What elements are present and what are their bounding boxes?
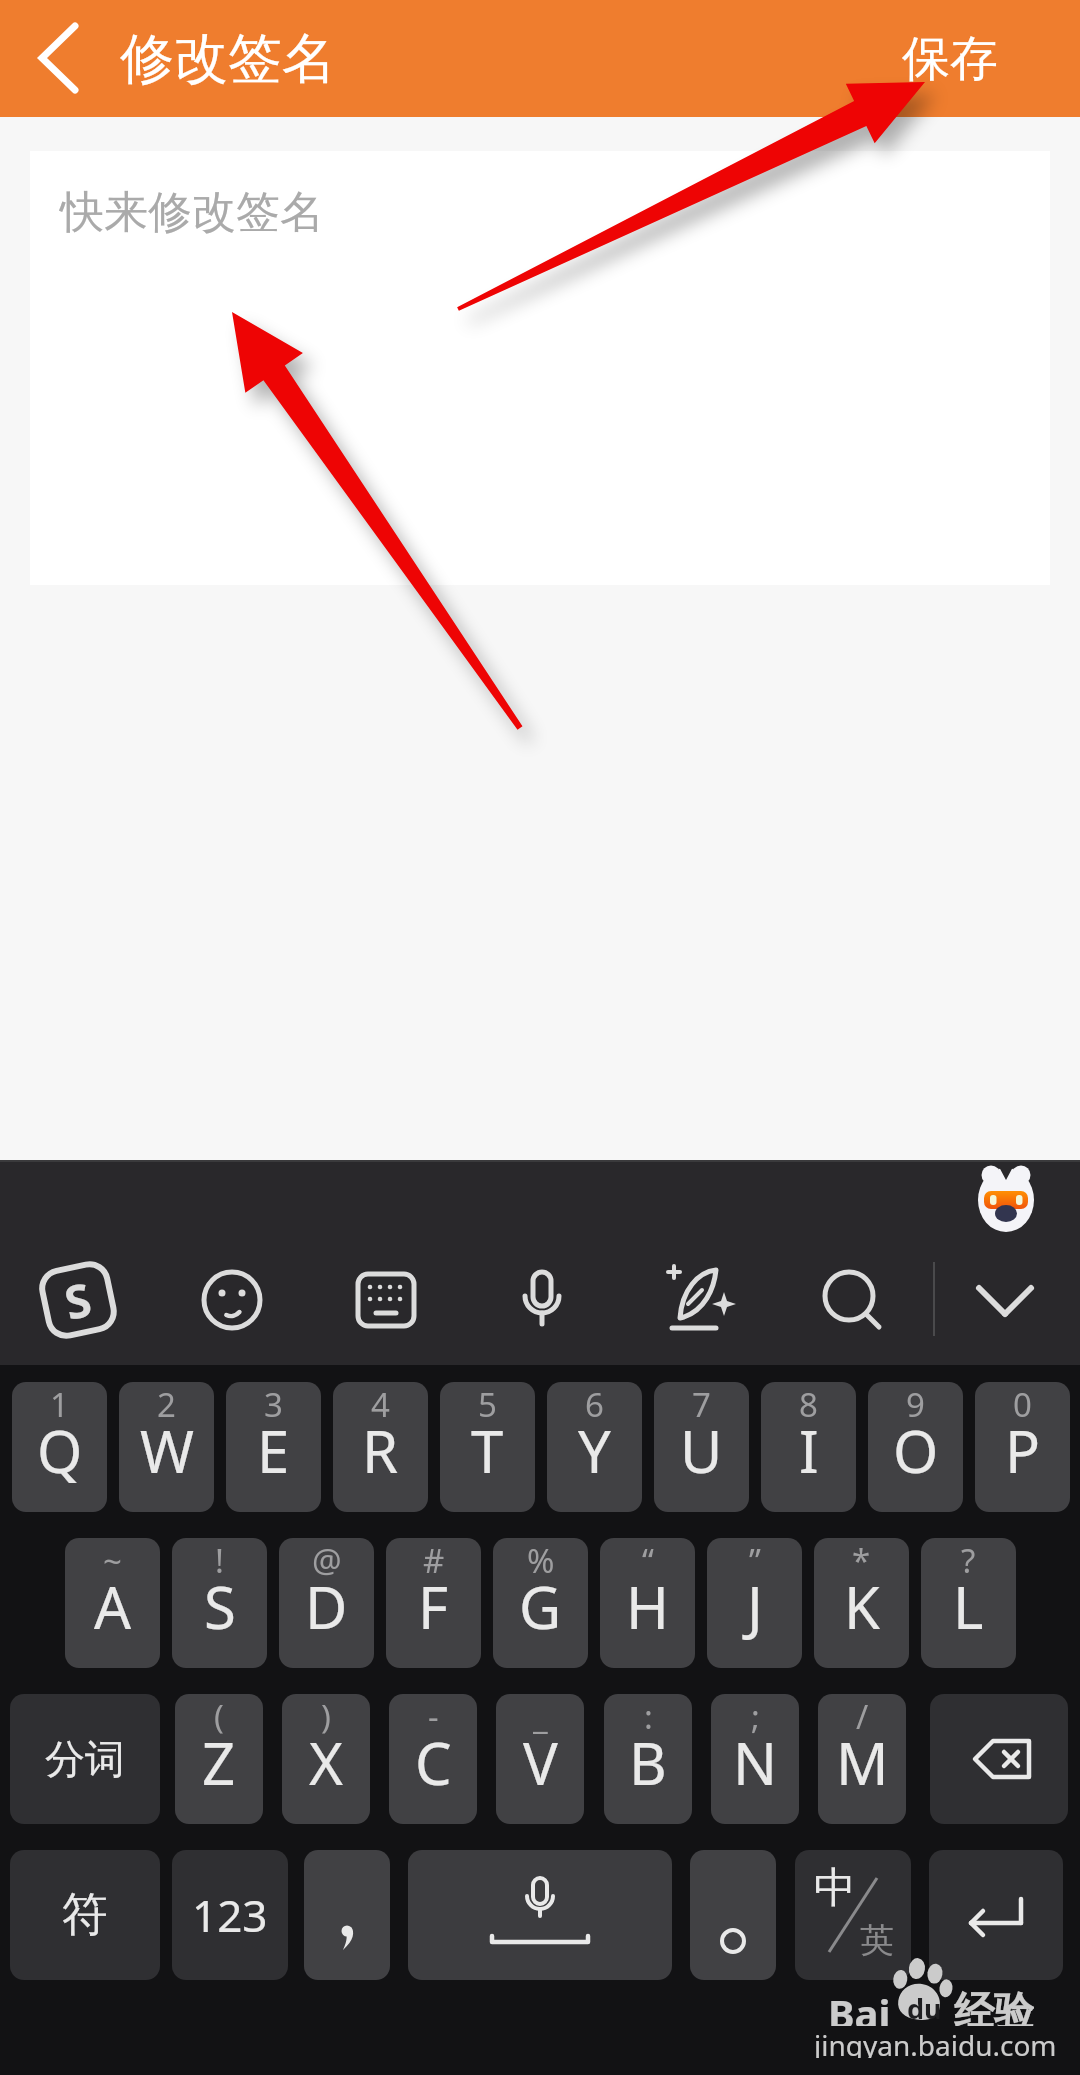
button[interactable]: [304, 1850, 390, 1980]
staticText: Y: [578, 1411, 611, 1490]
button[interactable]: ?: [921, 1538, 1016, 1668]
staticText: 分词: [45, 1734, 125, 1784]
staticText: 中: [814, 1862, 856, 1915]
button[interactable]: 3: [226, 1382, 321, 1512]
button[interactable]: 123: [172, 1850, 288, 1980]
staticText: _: [533, 1694, 548, 1736]
staticText: S: [59, 1267, 97, 1334]
staticText: 1: [50, 1382, 69, 1424]
staticText: :: [644, 1694, 653, 1736]
staticText: 7: [692, 1382, 711, 1424]
button[interactable]: (: [175, 1694, 263, 1824]
button[interactable]: ;: [711, 1694, 799, 1824]
staticText: Bai: [828, 1986, 891, 2026]
button[interactable]: 符: [10, 1850, 160, 1980]
staticText: 保存: [902, 29, 998, 89]
button[interactable]: 中: [795, 1850, 911, 1980]
staticText: ): [321, 1694, 331, 1736]
staticText: 6: [585, 1382, 604, 1424]
button[interactable]: [965, 1260, 1045, 1340]
staticText: 经验: [954, 1986, 1034, 2026]
button[interactable]: :: [604, 1694, 692, 1824]
button[interactable]: “: [600, 1538, 695, 1668]
staticText: 8: [799, 1382, 818, 1424]
button[interactable]: @: [279, 1538, 374, 1668]
staticText: M: [836, 1723, 889, 1802]
button[interactable]: [658, 1260, 738, 1340]
staticText: C: [415, 1723, 452, 1802]
button[interactable]: ”: [707, 1538, 802, 1668]
button[interactable]: S: [33, 1255, 123, 1345]
staticText: B: [629, 1723, 667, 1802]
staticText: P: [1005, 1411, 1041, 1490]
button[interactable]: 分词: [10, 1694, 160, 1824]
staticText: 0: [1013, 1382, 1032, 1424]
staticText: -: [428, 1694, 439, 1736]
staticText: D: [305, 1567, 348, 1646]
button[interactable]: !: [172, 1538, 267, 1668]
staticText: O: [893, 1411, 939, 1490]
staticText: N: [733, 1723, 778, 1802]
button[interactable]: 快来修改签名: [30, 151, 1050, 585]
staticText: E: [257, 1411, 290, 1490]
button[interactable]: #: [386, 1538, 481, 1668]
staticText: ?: [961, 1538, 976, 1580]
button[interactable]: [346, 1260, 426, 1340]
staticText: T: [471, 1411, 504, 1490]
button[interactable]: 9: [868, 1382, 963, 1512]
button[interactable]: [20, 20, 96, 96]
staticText: F: [418, 1567, 449, 1646]
button[interactable]: -: [389, 1694, 477, 1824]
button[interactable]: %: [493, 1538, 588, 1668]
staticText: 3: [264, 1382, 283, 1424]
button[interactable]: 2: [119, 1382, 214, 1512]
button[interactable]: 8: [761, 1382, 856, 1512]
staticText: 9: [906, 1382, 925, 1424]
staticText: L: [953, 1567, 984, 1646]
staticText: J: [747, 1567, 763, 1646]
button[interactable]: [929, 1850, 1063, 1980]
staticText: U: [680, 1411, 723, 1490]
button[interactable]: _: [496, 1694, 584, 1824]
button[interactable]: *: [814, 1538, 909, 1668]
button[interactable]: 1: [12, 1382, 107, 1512]
button[interactable]: 5: [440, 1382, 535, 1512]
button[interactable]: 0: [975, 1382, 1070, 1512]
button[interactable]: ~: [65, 1538, 160, 1668]
staticText: 英: [860, 1919, 894, 1962]
button[interactable]: [690, 1850, 776, 1980]
staticText: “: [642, 1538, 654, 1580]
staticText: X: [309, 1723, 343, 1802]
staticText: K: [844, 1567, 880, 1646]
staticText: 123: [192, 1885, 268, 1945]
staticText: ;: [751, 1694, 760, 1736]
staticText: %: [527, 1538, 555, 1580]
button[interactable]: [812, 1260, 892, 1340]
button[interactable]: [408, 1850, 672, 1980]
staticText: @: [312, 1538, 342, 1580]
staticText: /: [856, 1694, 869, 1736]
staticText: 快来修改签名: [60, 185, 324, 240]
staticText: 5: [478, 1382, 497, 1424]
staticText: (: [214, 1694, 224, 1736]
staticText: H: [626, 1567, 669, 1646]
staticText: 符: [62, 1886, 108, 1944]
button[interactable]: ): [282, 1694, 370, 1824]
button[interactable]: [192, 1260, 272, 1340]
button[interactable]: [966, 1160, 1046, 1240]
staticText: #: [423, 1538, 445, 1580]
button[interactable]: 7: [654, 1382, 749, 1512]
button[interactable]: 4: [333, 1382, 428, 1512]
button[interactable]: /: [818, 1694, 906, 1824]
button[interactable]: [502, 1260, 582, 1340]
button[interactable]: [930, 1694, 1068, 1824]
staticText: V: [523, 1723, 558, 1802]
staticText: R: [362, 1411, 399, 1490]
staticText: ~: [103, 1538, 122, 1580]
staticText: du: [907, 1990, 942, 2024]
button[interactable]: 保存: [870, 0, 1030, 117]
staticText: 2: [157, 1382, 176, 1424]
staticText: *: [852, 1538, 871, 1580]
staticText: W: [140, 1411, 194, 1490]
button[interactable]: 6: [547, 1382, 642, 1512]
